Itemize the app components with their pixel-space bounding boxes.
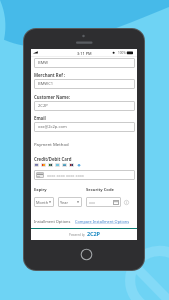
button[interactable]: JCB [48, 163, 53, 167]
staticText: Credit/Debit Card [34, 156, 72, 162]
staticText: Security Code [86, 187, 114, 193]
staticText: Payment Method [34, 141, 69, 147]
staticText: BMW [38, 60, 49, 66]
staticText: Merchant Ref : [34, 72, 66, 78]
staticText: Email [34, 115, 46, 121]
button[interactable]: BMWC1 [34, 79, 135, 89]
staticText: 3:11 PM [77, 51, 92, 56]
button[interactable]: Home [76, 244, 97, 265]
staticText: xxx [89, 200, 96, 205]
button[interactable]: 2C2P [34, 101, 135, 111]
button[interactable]: Mastercard [41, 163, 46, 167]
button[interactable]: Year [58, 197, 82, 207]
staticText: Expiry [34, 187, 47, 193]
staticText: 2C2P [87, 230, 100, 238]
button[interactable]: Amex [55, 163, 60, 167]
button[interactable]: More cards [77, 163, 81, 167]
button[interactable]: xxx@2c2p.com [34, 122, 135, 132]
staticText: Installment Options [34, 219, 71, 224]
staticText: Customer Name: [34, 94, 71, 100]
button[interactable]: Month [34, 197, 54, 207]
staticText: Month [36, 200, 49, 205]
staticText: Compare Installment Options [75, 219, 130, 224]
button[interactable]: UnionPay [62, 163, 67, 167]
staticText: 100% [118, 51, 126, 55]
staticText: BMWC1 [38, 81, 54, 87]
button[interactable]: Security code help [124, 200, 129, 205]
button[interactable]: xxx [86, 197, 121, 207]
staticText: xxx@2c2p.com [38, 124, 67, 130]
button[interactable]: Visa [34, 163, 39, 167]
staticText: Year [60, 200, 68, 205]
button[interactable]: Diners Club [69, 163, 74, 167]
button[interactable]: Compare Installment Options [75, 219, 130, 224]
staticText: xxxx xxxx xxxx xxxx [47, 173, 84, 178]
button[interactable]: BMW [34, 58, 135, 68]
staticText: Powered by [69, 233, 85, 237]
button[interactable]: xxxx xxxx xxxx xxxx [34, 170, 135, 180]
staticText: 2C2P [38, 103, 48, 109]
